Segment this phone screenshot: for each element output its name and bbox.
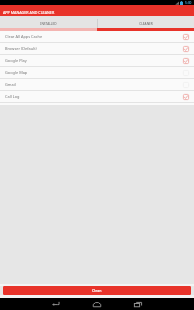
staticText: Google Play [5, 58, 183, 63]
staticText: Browser (Default) [5, 46, 183, 51]
staticText: Gmail [5, 82, 183, 87]
button[interactable]: Browser (Default) [0, 43, 194, 54]
staticText: APP MANAGER AND CLEANER [3, 10, 55, 15]
staticText: Call Log [5, 94, 183, 99]
staticText: CLEANER [139, 22, 153, 26]
button[interactable]: Call Log [0, 91, 194, 102]
button[interactable]: Clean [3, 286, 191, 295]
staticText: Clear All Apps Cache [5, 34, 183, 39]
staticText: Clean [92, 288, 102, 293]
button[interactable]: Recents [128, 298, 148, 310]
button[interactable]: INSTALLED [0, 16, 97, 31]
button[interactable]: Google Map [0, 67, 194, 78]
button[interactable]: Back [46, 298, 66, 310]
button[interactable]: Gmail [0, 79, 194, 90]
staticText: 5:30 [185, 1, 192, 5]
staticText: INSTALLED [40, 22, 57, 26]
staticText: Google Map [5, 70, 183, 75]
button[interactable]: CLEANER [97, 16, 194, 31]
button[interactable]: Home [87, 298, 107, 310]
button[interactable]: Clear All Apps Cache [0, 31, 194, 42]
button[interactable]: Google Play [0, 55, 194, 66]
